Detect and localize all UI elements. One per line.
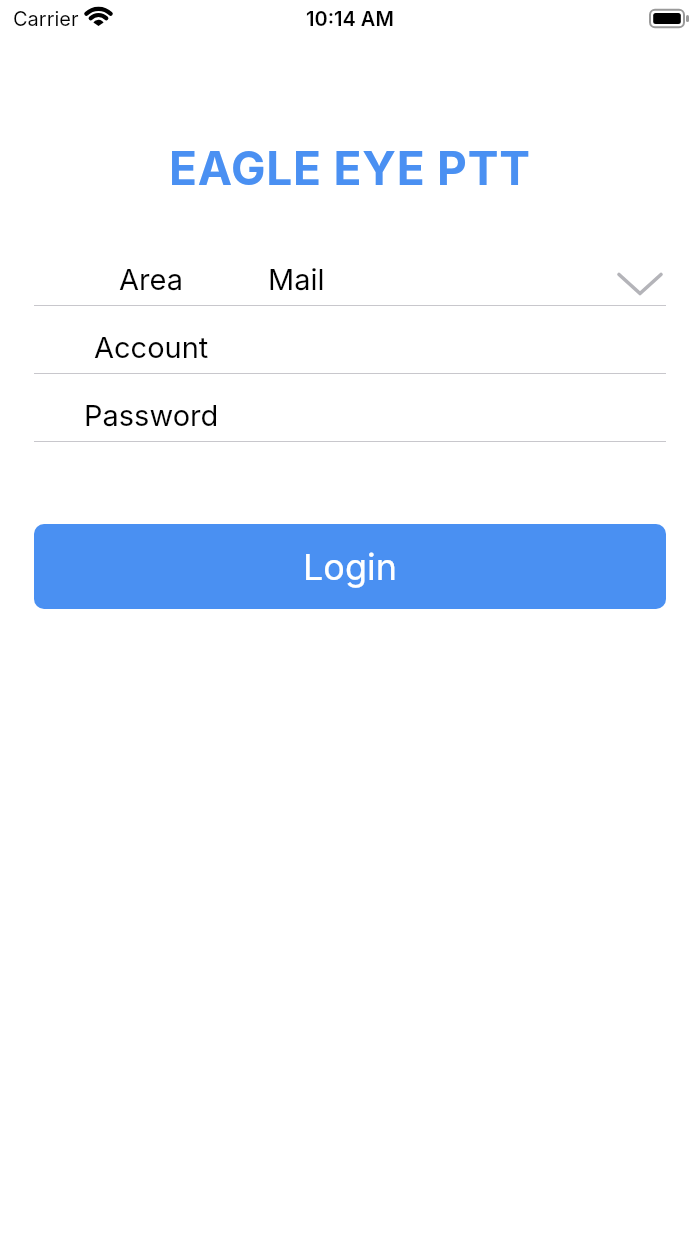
button[interactable]: Account [34, 306, 666, 373]
staticText: Area [119, 262, 183, 297]
staticText: Mail [268, 262, 325, 297]
staticText: EAGLE EYE PTT [169, 140, 531, 196]
staticText: Account [94, 330, 209, 365]
button[interactable]: Password [34, 374, 666, 441]
staticText: Password [84, 398, 219, 433]
staticText: 10:14 AM [306, 7, 394, 31]
staticText: Carrier [13, 7, 79, 31]
button[interactable]: Login [34, 524, 666, 609]
button[interactable]: Area [34, 238, 666, 305]
staticText: Login [303, 545, 398, 589]
